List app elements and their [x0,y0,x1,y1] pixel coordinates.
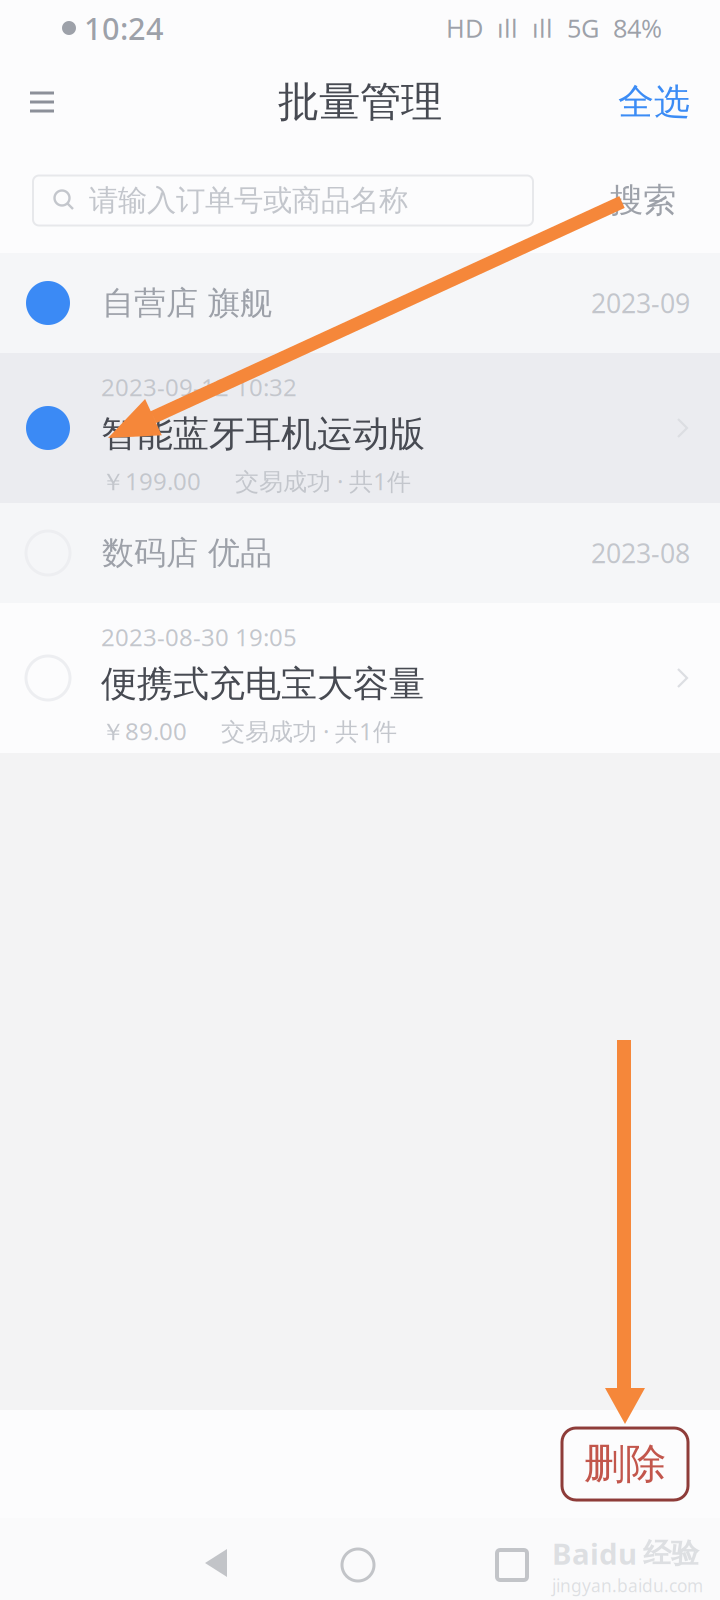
button[interactable]: 2023-08-30 19:05 [0,603,720,753]
button[interactable]: 自营店 旗舰 [0,253,720,353]
button[interactable]: 2023-09-12 10:32 [0,353,720,503]
staticText: 搜索 [610,180,676,221]
staticText: 请输入订单号或商品名称 [89,182,408,218]
button[interactable]: Recents [479,1532,545,1598]
staticText: 交易成功 · 共1件 [235,465,411,497]
staticText: 交易成功 · 共1件 [221,715,397,747]
staticText: jingyan.baidu.com [552,1574,703,1597]
button[interactable]: 请输入订单号或商品名称 [33,175,533,225]
staticText: 全选 [618,80,690,124]
staticText: 便携式充电宝大容量 [101,662,425,706]
staticText: 自营店 旗舰 [102,283,272,323]
staticText: 2023-08-30 19:05 [101,621,297,653]
staticText: 2023-09 [591,285,690,321]
staticText: Baidu [552,1534,637,1573]
button[interactable]: 数码店 优品 [0,503,720,603]
staticText: 10:24 [84,8,164,48]
button[interactable]: Menu [12,73,72,131]
staticText: 2023-09-12 10:32 [101,371,297,403]
staticText: 数码店 优品 [102,533,272,573]
staticText: 批量管理 [278,77,442,127]
button[interactable]: 全选 [604,66,704,138]
staticText: ￥89.00 [101,715,187,747]
staticText: 2023-08 [591,535,690,571]
button[interactable]: Back [163,1533,269,1593]
button[interactable]: 搜索 [588,175,698,225]
button[interactable]: Home [324,1531,392,1599]
staticText: 删除 [584,1439,666,1489]
staticText: 经验 [643,1536,699,1571]
button[interactable]: 删除 [562,1428,688,1500]
staticText: ￥199.00 [101,465,201,497]
staticText: 智能蓝牙耳机运动版 [101,412,425,456]
staticText: HD ıll ıll 5G 84% [446,11,662,45]
